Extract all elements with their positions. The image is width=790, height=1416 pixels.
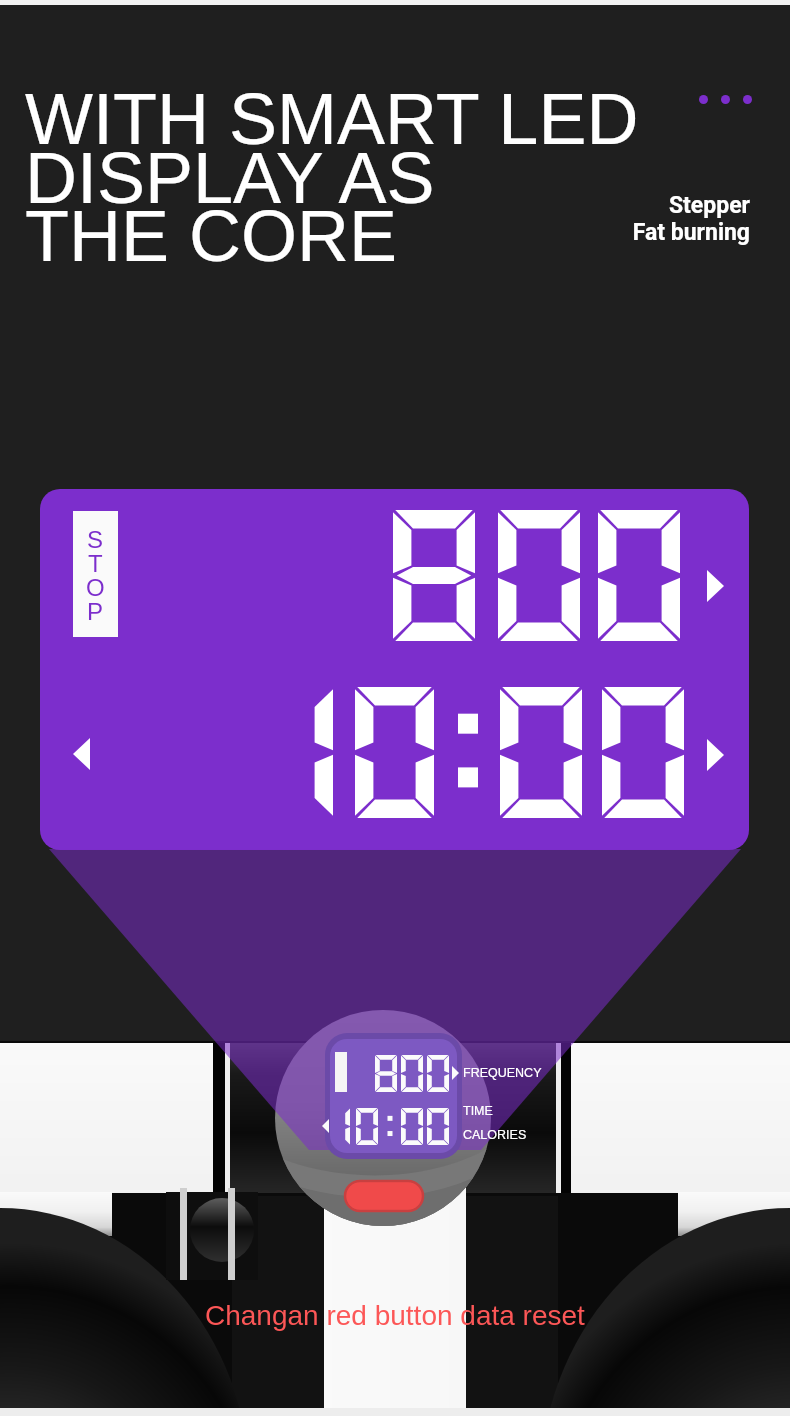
staticText: WITH SMART LED	[25, 79, 639, 159]
staticText: FREQUENCY	[463, 1066, 542, 1080]
staticText: THE CORE	[25, 196, 398, 276]
staticText: P	[87, 598, 104, 622]
staticText: Changan red button data reset	[205, 1300, 585, 1331]
staticText: Stepper	[668, 192, 750, 219]
staticText: TIME	[463, 1104, 493, 1118]
staticText: O	[86, 574, 105, 598]
staticText: S	[87, 526, 104, 550]
button[interactable]: S	[40, 489, 749, 850]
staticText: DISPLAY AS	[25, 138, 435, 218]
staticText: CALORIES	[463, 1128, 527, 1142]
staticText: Fat burning	[632, 219, 750, 246]
staticText: T	[88, 550, 103, 574]
